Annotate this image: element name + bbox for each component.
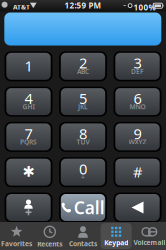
staticText: Call xyxy=(74,196,105,219)
staticText: JKL xyxy=(78,102,88,111)
button[interactable]: 3 xyxy=(113,51,161,81)
staticText: Contacts xyxy=(69,239,97,248)
staticText: ABC xyxy=(77,67,89,76)
staticText: Favorites xyxy=(1,239,32,248)
button[interactable]: 1 xyxy=(4,51,52,81)
staticText: GHI xyxy=(22,102,34,111)
staticText: TUV xyxy=(76,137,89,146)
staticText: 7 xyxy=(24,124,32,143)
staticText: Keypad xyxy=(104,238,128,247)
staticText: 3 xyxy=(133,53,141,73)
button[interactable]: 0 xyxy=(59,157,107,187)
staticText: AT&T xyxy=(13,3,30,11)
button[interactable]: ✱ xyxy=(4,157,52,187)
staticText: # xyxy=(133,162,142,181)
staticText: 1 xyxy=(24,56,32,76)
staticText: ✱ xyxy=(22,163,34,180)
staticText: 9 xyxy=(133,124,141,143)
button[interactable]: 2 xyxy=(59,51,107,81)
staticText: 4 xyxy=(24,88,32,108)
staticText: DEF xyxy=(131,67,144,76)
staticText: 0 xyxy=(79,159,87,179)
staticText: 5 xyxy=(79,88,87,108)
staticText: + xyxy=(81,173,85,182)
button[interactable]: Keypad xyxy=(100,222,133,250)
button[interactable]: 5 xyxy=(59,87,107,117)
staticText: 12:59 PM xyxy=(64,0,101,11)
button[interactable]: 6 xyxy=(113,87,161,117)
staticText: Recents xyxy=(37,240,62,248)
staticText: WXYZ xyxy=(128,137,146,146)
button[interactable]: 4 xyxy=(4,87,52,117)
button[interactable]: Voicemail xyxy=(133,222,166,250)
button[interactable]: Delete xyxy=(113,192,161,222)
button[interactable]: 8 xyxy=(59,122,107,152)
button[interactable]: Favorites xyxy=(0,222,33,250)
button[interactable]: 9 xyxy=(113,122,161,152)
button[interactable]: Add Contact xyxy=(4,192,52,222)
button[interactable]: 7 xyxy=(4,122,52,152)
button[interactable]: # xyxy=(113,157,161,187)
button[interactable]: Call xyxy=(59,192,107,222)
staticText: 2 xyxy=(79,53,87,73)
staticText: PQRS xyxy=(20,137,37,146)
button[interactable]: Recents xyxy=(33,222,66,250)
button[interactable]: Contacts xyxy=(66,222,100,250)
staticText: MNO xyxy=(129,102,145,111)
staticText: 8 xyxy=(79,124,87,143)
staticText: 6 xyxy=(133,88,141,108)
staticText: 100% xyxy=(134,2,156,13)
staticText: Voicemail xyxy=(133,238,165,247)
